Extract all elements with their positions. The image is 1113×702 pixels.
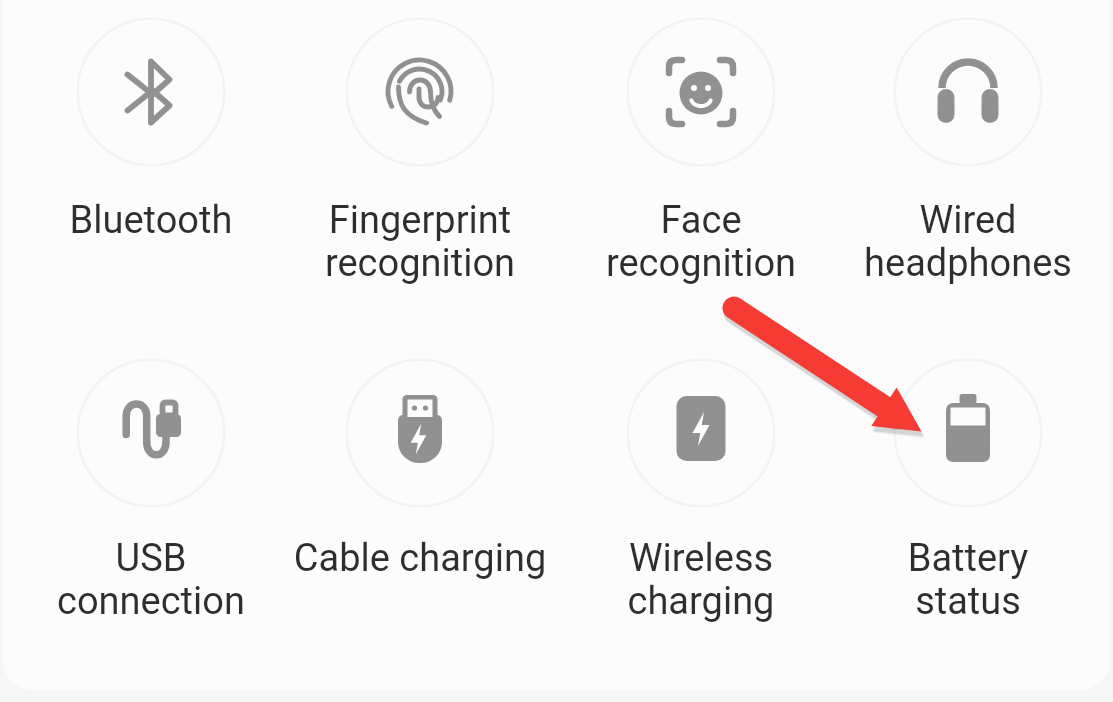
button[interactable]: Wired headphones [828, 14, 1108, 295]
staticText: status [828, 579, 1108, 624]
staticText: headphones [828, 241, 1108, 286]
staticText: Battery [828, 536, 1108, 581]
button[interactable]: Face recognition [561, 14, 841, 295]
button[interactable]: Wireless charging [561, 355, 841, 640]
button[interactable]: USB connection [11, 355, 291, 640]
button[interactable]: Bluetooth [11, 14, 291, 295]
staticText: connection [11, 579, 291, 624]
staticText: recognition [561, 241, 841, 286]
staticText: Face [561, 198, 841, 243]
staticText: recognition [280, 241, 560, 286]
staticText: Bluetooth [11, 198, 291, 243]
staticText: charging [561, 579, 841, 624]
staticText: Fingerprint [280, 198, 560, 243]
staticText: Wired [828, 198, 1108, 243]
button[interactable]: Fingerprint recognition [280, 14, 560, 295]
staticText: Wireless [561, 536, 841, 581]
staticText: Cable charging [280, 536, 560, 581]
button[interactable]: Battery status [828, 355, 1108, 640]
button[interactable]: Cable charging [280, 355, 560, 640]
staticText: USB [11, 536, 291, 581]
